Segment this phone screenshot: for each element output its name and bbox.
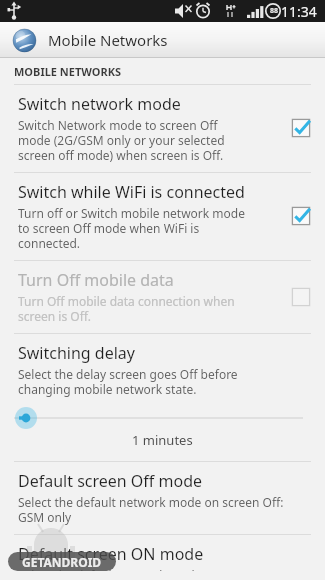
staticText: 11:34: [281, 2, 317, 21]
button[interactable]: Turn Off mobile data: [0, 261, 325, 333]
staticText: Default screen Off mode: [18, 470, 203, 492]
button[interactable]: Switch while WiFi is connected: [0, 173, 325, 260]
staticText: MOBILE NETWORKS: [14, 64, 122, 79]
button[interactable]: Checked: [291, 206, 311, 226]
button[interactable]: Checked: [291, 118, 311, 138]
staticText: Switch network mode: [18, 93, 181, 115]
button[interactable]: Switching delay: [0, 334, 325, 461]
button[interactable]: Default screen ON mode: [0, 535, 325, 580]
staticText: Switching delay: [18, 342, 135, 364]
staticText: Turn Off mobile data: [18, 269, 174, 291]
button[interactable]: Switching delay slider: [14, 407, 303, 429]
staticText: 1 minutes: [132, 431, 193, 449]
button[interactable]: Unchecked: [291, 287, 311, 307]
staticText: Mobile Networks: [48, 30, 168, 50]
staticText: Select the default network mode on scree…: [18, 494, 284, 525]
button[interactable]: Switch network mode: [0, 85, 325, 172]
staticText: Default screen ON mode: [18, 543, 204, 565]
staticText: 88: [270, 6, 279, 16]
staticText: Switch Network mode to screen Off mode (…: [18, 117, 225, 163]
staticText: Select the default network mode on scree…: [18, 567, 285, 571]
button[interactable]: Default screen Off mode: [0, 462, 325, 534]
staticText: Switch while WiFi is connected: [18, 181, 245, 203]
staticText: Select the delay screen goes Off before …: [18, 366, 238, 397]
staticText: GETANDROID: [22, 554, 102, 570]
staticText: Turn off or Switch mobile network mode t…: [18, 205, 245, 251]
staticText: Turn Off mobile data connection when scr…: [18, 293, 235, 324]
